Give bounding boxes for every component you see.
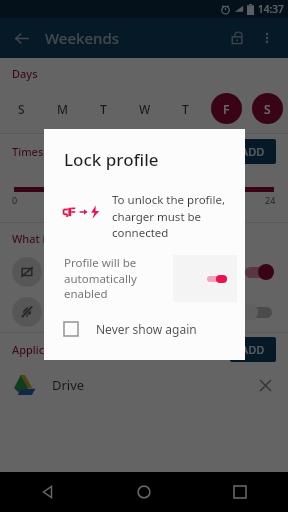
staticText: Times — [12, 144, 44, 159]
staticText: 0 — [12, 194, 18, 206]
button[interactable]: S — [252, 93, 283, 124]
button[interactable]: S — [6, 93, 37, 124]
button[interactable]: Profile will be automatically enabled — [44, 254, 245, 302]
button[interactable]: Screen off — [0, 252, 288, 292]
button[interactable]: Drive — [0, 365, 288, 405]
button[interactable]: Home — [96, 472, 192, 512]
staticText: Weekends — [45, 28, 120, 48]
staticText: Days — [12, 66, 38, 81]
staticText: Lock profile — [64, 148, 159, 171]
staticText: 14:37 — [258, 2, 284, 16]
button[interactable]: Remove Drive — [254, 374, 276, 396]
button[interactable]: App notification — [0, 292, 288, 332]
button[interactable]: Recents — [192, 472, 288, 512]
staticText: Profile will be automatically enabled — [64, 255, 162, 301]
button[interactable]: Back — [8, 25, 34, 51]
staticText: M — [57, 101, 69, 117]
staticText: ADD — [241, 342, 265, 357]
button[interactable]: W — [129, 93, 160, 124]
staticText: ADD — [241, 144, 265, 159]
button[interactable]: Never show again — [44, 314, 245, 344]
button[interactable] — [242, 262, 276, 282]
staticText: Screen off — [56, 263, 118, 281]
button[interactable]: Lock profile — [224, 25, 250, 51]
staticText: Applications — [12, 342, 77, 357]
button[interactable]: F — [211, 93, 242, 124]
button[interactable]: T — [170, 93, 201, 124]
button[interactable]: T — [88, 93, 119, 124]
button[interactable]: More options — [254, 25, 280, 51]
staticText: S — [18, 101, 25, 117]
staticText: S — [264, 101, 271, 117]
staticText: Never show again — [96, 321, 197, 337]
staticText: T — [182, 101, 189, 117]
button[interactable]: Back — [0, 472, 96, 512]
staticText: Drive — [52, 376, 85, 394]
button[interactable]: ADD — [230, 139, 276, 164]
button[interactable] — [242, 302, 276, 322]
staticText: W — [139, 101, 151, 117]
button[interactable]: M — [47, 93, 78, 124]
button[interactable]: ADD — [230, 337, 276, 362]
staticText: To unlock the profile, charger must be c… — [112, 192, 229, 240]
staticText: 24 — [265, 194, 276, 206]
staticText: T — [100, 101, 107, 117]
staticText: F — [223, 101, 230, 117]
staticText: What is — [12, 231, 51, 246]
